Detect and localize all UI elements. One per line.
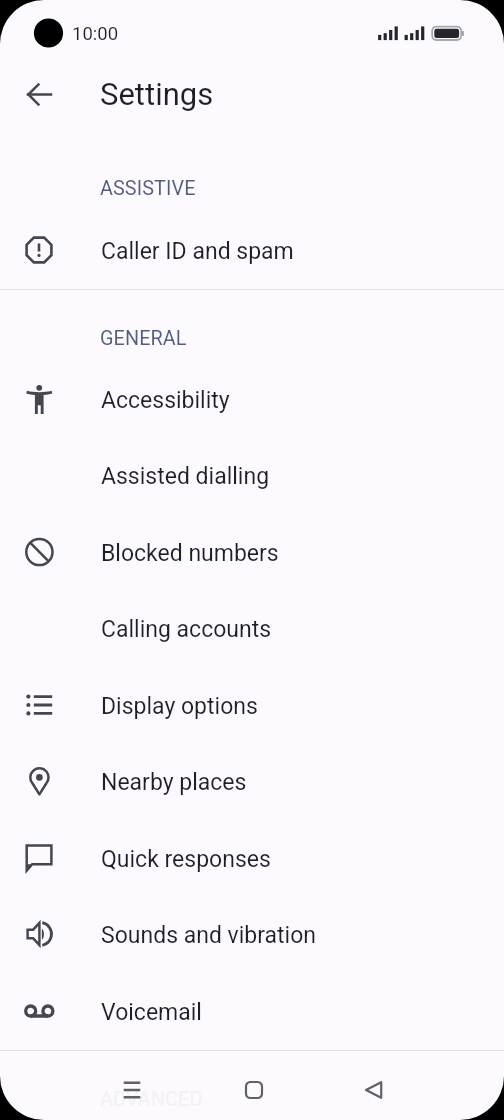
staticText: GENERAL <box>100 327 187 350</box>
staticText: Blocked numbers <box>101 540 279 567</box>
staticText: Sounds and vibration <box>101 922 317 949</box>
button[interactable]: Nearby places <box>0 743 504 819</box>
button[interactable]: Display options <box>0 667 504 743</box>
staticText: ADVANCED <box>100 1088 203 1111</box>
staticText: Display options <box>101 693 258 720</box>
staticText: ASSISTIVE <box>100 177 196 200</box>
staticText: Nearby places <box>101 769 247 796</box>
button[interactable]: Voicemail <box>0 973 504 1049</box>
staticText: Settings <box>100 76 214 112</box>
staticText: Calling accounts <box>101 616 272 643</box>
button[interactable]: Accessibility <box>0 361 504 437</box>
staticText: Assisted dialling <box>101 463 270 490</box>
staticText: Quick responses <box>101 846 271 873</box>
staticText: Voicemail <box>101 999 202 1026</box>
button[interactable]: Sounds and vibration <box>0 896 504 972</box>
button[interactable]: Home <box>230 1065 278 1113</box>
button[interactable]: Blocked numbers <box>0 514 504 590</box>
button[interactable]: Caller ID and spam <box>0 212 504 288</box>
button[interactable]: Back <box>350 1065 398 1113</box>
staticText: 10:00 <box>72 23 119 45</box>
button[interactable]: Quick responses <box>0 820 504 896</box>
staticText: Caller ID and spam <box>101 238 294 265</box>
button[interactable]: Recent apps <box>108 1065 156 1113</box>
button[interactable]: Calling accounts <box>0 590 504 666</box>
button[interactable]: Assisted dialling <box>0 437 504 513</box>
button[interactable]: Navigate up <box>16 71 63 118</box>
staticText: Accessibility <box>101 387 230 414</box>
